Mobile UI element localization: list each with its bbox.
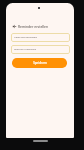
staticText: Name des Reminders xyxy=(14,36,38,39)
staticText: Intervall Notification xyxy=(14,48,37,51)
button[interactable]: Back xyxy=(9,21,69,31)
button[interactable]: Intervall Notification xyxy=(11,45,70,54)
staticText: Speichern xyxy=(33,61,47,65)
staticText: Reminder erstellen xyxy=(18,24,49,28)
button[interactable]: Name des Reminders xyxy=(11,33,70,42)
button[interactable]: Speichern xyxy=(12,58,67,68)
